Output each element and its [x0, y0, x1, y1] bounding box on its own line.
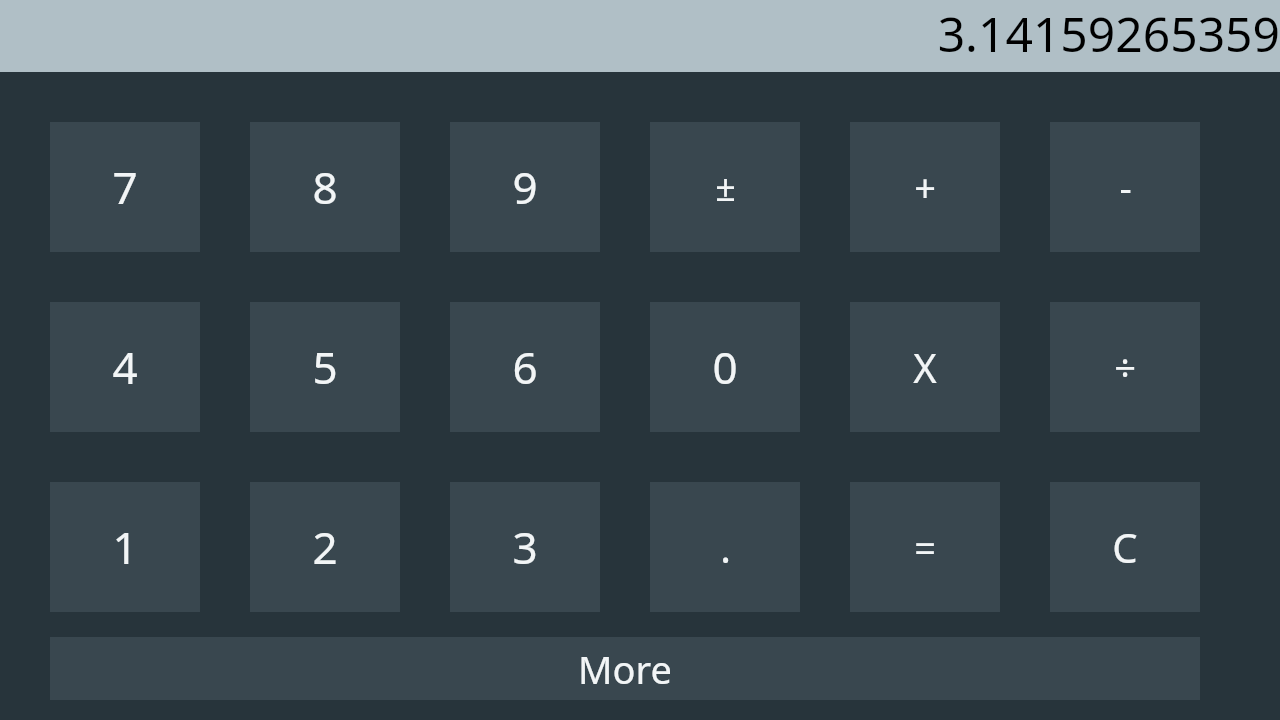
- staticText: =: [914, 521, 936, 573]
- button[interactable]: 6: [450, 302, 600, 432]
- button[interactable]: Divide: [1050, 302, 1200, 432]
- button[interactable]: 5: [250, 302, 400, 432]
- staticText: ±: [715, 163, 736, 212]
- staticText: 6: [512, 337, 538, 397]
- button[interactable]: 3: [450, 482, 600, 612]
- button[interactable]: 4: [50, 302, 200, 432]
- staticText: 2: [312, 517, 338, 577]
- button[interactable]: Plus: [850, 122, 1000, 252]
- staticText: More: [578, 643, 672, 695]
- button[interactable]: 0: [650, 302, 800, 432]
- button[interactable]: Plus minus sign: [650, 122, 800, 252]
- staticText: +: [914, 161, 936, 213]
- button[interactable]: 2: [250, 482, 400, 612]
- staticText: 4: [112, 337, 138, 397]
- button[interactable]: More: [50, 637, 1200, 700]
- staticText: X: [913, 340, 937, 394]
- button[interactable]: 1: [50, 482, 200, 612]
- button[interactable]: Decimal point: [650, 482, 800, 612]
- staticText: -: [1119, 161, 1132, 213]
- staticText: 1: [112, 517, 138, 577]
- staticText: .: [720, 520, 731, 574]
- staticText: 0: [712, 337, 738, 397]
- button[interactable]: 7: [50, 122, 200, 252]
- button[interactable]: Clear: [1050, 482, 1200, 612]
- staticText: 7: [112, 157, 138, 217]
- button[interactable]: 8: [250, 122, 400, 252]
- staticText: 5: [312, 337, 338, 397]
- staticText: 8: [312, 157, 338, 217]
- staticText: 3.14159265359: [937, 1, 1280, 66]
- staticText: C: [1112, 520, 1138, 574]
- staticText: 9: [512, 157, 538, 217]
- staticText: ÷: [1114, 341, 1136, 393]
- button[interactable]: 9: [450, 122, 600, 252]
- button[interactable]: Equals: [850, 482, 1000, 612]
- button[interactable]: Minus: [1050, 122, 1200, 252]
- staticText: 3: [512, 517, 538, 577]
- button[interactable]: Multiply: [850, 302, 1000, 432]
